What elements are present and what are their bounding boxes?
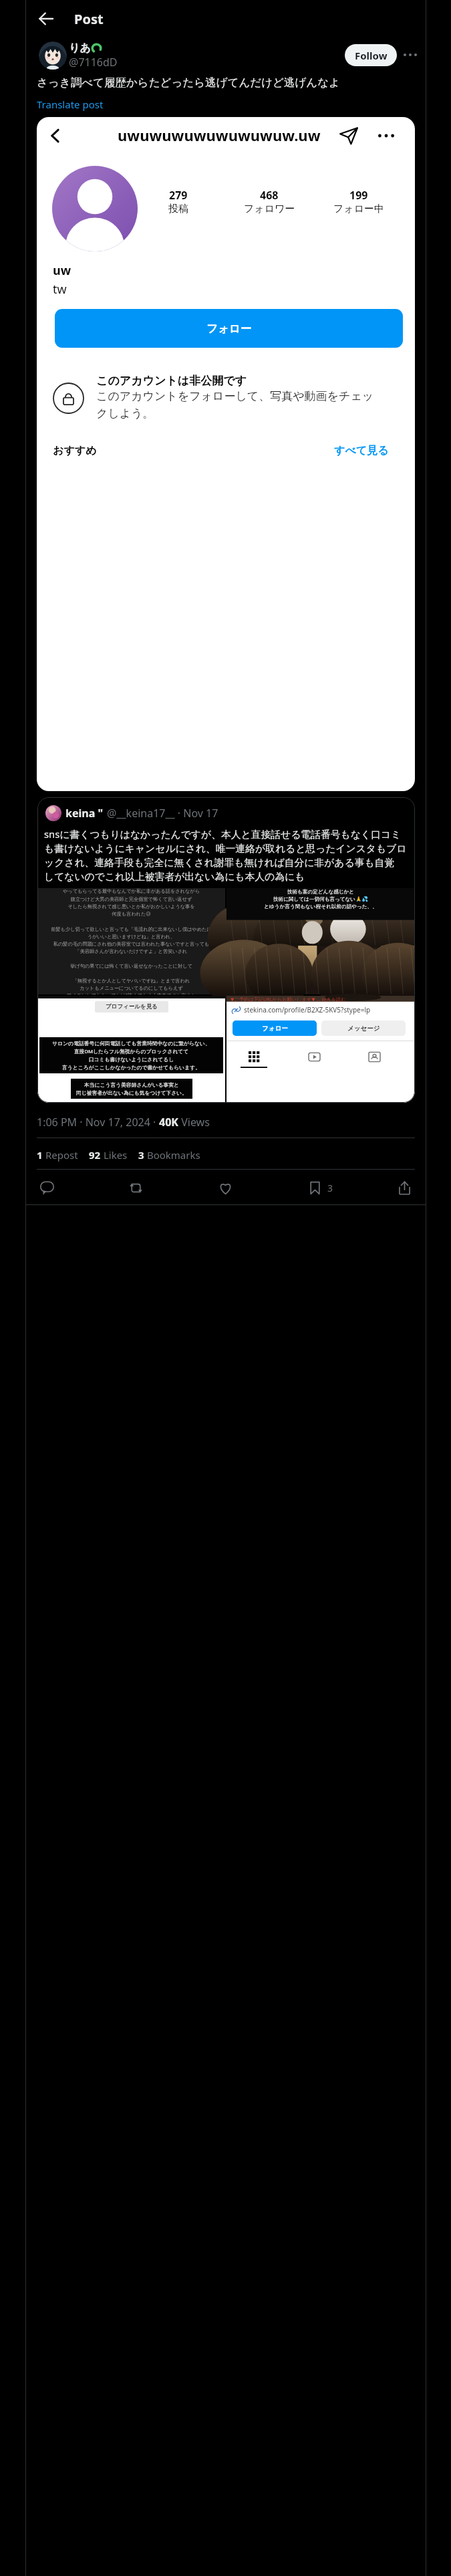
button[interactable]: Tagged — [362, 1045, 386, 1069]
staticText: りあ — [69, 41, 91, 55]
staticText: さっき調べて履歴からたどったら逃げてんだけど逃げんなよ — [37, 76, 341, 90]
staticText: フォロワー — [244, 203, 295, 215]
button[interactable]: すべて見る — [334, 444, 389, 457]
button[interactable]: プロフィールを見る — [37, 996, 225, 1103]
staticText: フォロー — [262, 1025, 288, 1033]
staticText: @__keina17__ · Nov 17 — [107, 806, 218, 821]
staticText: Views — [178, 1115, 210, 1130]
button[interactable]: Follow — [345, 44, 397, 66]
staticText: Post — [74, 10, 104, 28]
staticText: 投稿 — [168, 203, 188, 215]
staticText: このアカウントをフォローして、写真や動画をチェッ クしよう。 — [96, 389, 374, 421]
staticText: プロフィールを見る — [106, 1003, 158, 1010]
button[interactable]: Reels — [302, 1045, 326, 1069]
button[interactable]: プロフィールを見る — [95, 1001, 168, 1012]
button[interactable]: More options — [375, 124, 398, 147]
button[interactable]: 3 — [138, 1148, 200, 1162]
button[interactable]: Share — [390, 1173, 419, 1202]
staticText: Likes — [101, 1148, 128, 1162]
staticText: 3 — [138, 1148, 144, 1162]
button[interactable]: Share — [337, 124, 360, 147]
button[interactable]: More options — [400, 45, 420, 65]
staticText: おすすめ — [53, 444, 97, 457]
button[interactable]: Grid — [242, 1045, 266, 1069]
staticText: フォロー中 — [333, 203, 385, 215]
staticText: stekina.com/profile/B2XZ-5KV5?stype=lp — [244, 1005, 371, 1014]
staticText: 92 — [89, 1148, 101, 1162]
staticText: 279 — [169, 188, 188, 203]
button[interactable]: Translate post — [37, 98, 104, 111]
staticText: Bookmarks — [144, 1148, 200, 1162]
button[interactable] — [39, 41, 67, 70]
staticText: 3 — [327, 1182, 333, 1194]
staticText: フォロー — [206, 322, 252, 336]
button[interactable]: Reply — [32, 1173, 61, 1202]
button[interactable]: フォロー — [233, 1021, 317, 1036]
staticText: 468 — [260, 188, 279, 203]
staticText: 技術も案の定どんな感じかと 技術に関しては一切何も言ってない🙏💦 とゆうか言う間… — [229, 889, 412, 909]
staticText: 本当にこう言う美容師さんがいる事実と 同じ被害者が出ない為にも気をつけて下さい。 — [76, 1081, 187, 1096]
staticText: やってもらってる最中もなんでか私に非がある話をされながら 腹立つけど大男の美容師… — [41, 888, 221, 994]
staticText: サロンの電話番号に何回電話しても営業時間中なのに繋がらない、 直接DMしたらフル… — [39, 1040, 223, 1071]
button[interactable]: Back — [46, 126, 65, 145]
staticText: uw — [53, 262, 71, 279]
staticText: 40K — [159, 1115, 178, 1130]
button[interactable]: メッセージ — [321, 1021, 406, 1036]
button[interactable]: 1 — [37, 1148, 78, 1162]
staticText: 1:06 PM · Nov 17, 2024 · — [37, 1115, 159, 1130]
button[interactable]: ▼ご予約は下記URLからお願いします▼ ... 続きを読む — [227, 996, 415, 1103]
staticText: 199 — [349, 188, 368, 203]
button[interactable]: Like — [210, 1173, 240, 1202]
staticText: @7116dD — [69, 55, 118, 70]
button[interactable]: 技術も案の定どんな感じかと 技術に関しては一切何も言ってない🙏💦 とゆうか言う間… — [227, 888, 415, 994]
staticText: メッセージ — [347, 1025, 380, 1033]
staticText: Repost — [43, 1148, 78, 1162]
button[interactable]: Bookmark — [300, 1173, 335, 1202]
button[interactable]: やってもらってる最中もなんでか私に非がある話をされながら 腹立つけど大男の美容師… — [37, 888, 225, 994]
staticText: tw — [53, 281, 67, 298]
staticText: keina " — [65, 806, 104, 821]
staticText: Follow — [355, 49, 388, 62]
staticText: ▼ご予約は下記URLからお願いします▼ ... 続きを読む — [231, 996, 346, 1002]
staticText: snsに書くつもりはなかったんですが、本人と直接話せる電話番号もなく口コミ も書… — [44, 827, 413, 883]
button[interactable]: Repost — [121, 1173, 150, 1202]
staticText: uwuwuwuwuwuwuwuw.uw — [118, 125, 321, 145]
button[interactable]: Back — [35, 8, 57, 29]
button[interactable]: keina " — [37, 797, 415, 1103]
button[interactable]: Back — [37, 117, 415, 791]
staticText: 1 — [37, 1148, 43, 1162]
button[interactable]: 92 — [89, 1148, 128, 1162]
button[interactable]: フォロー — [55, 309, 403, 348]
staticText: このアカウントは非公開です — [96, 374, 247, 388]
